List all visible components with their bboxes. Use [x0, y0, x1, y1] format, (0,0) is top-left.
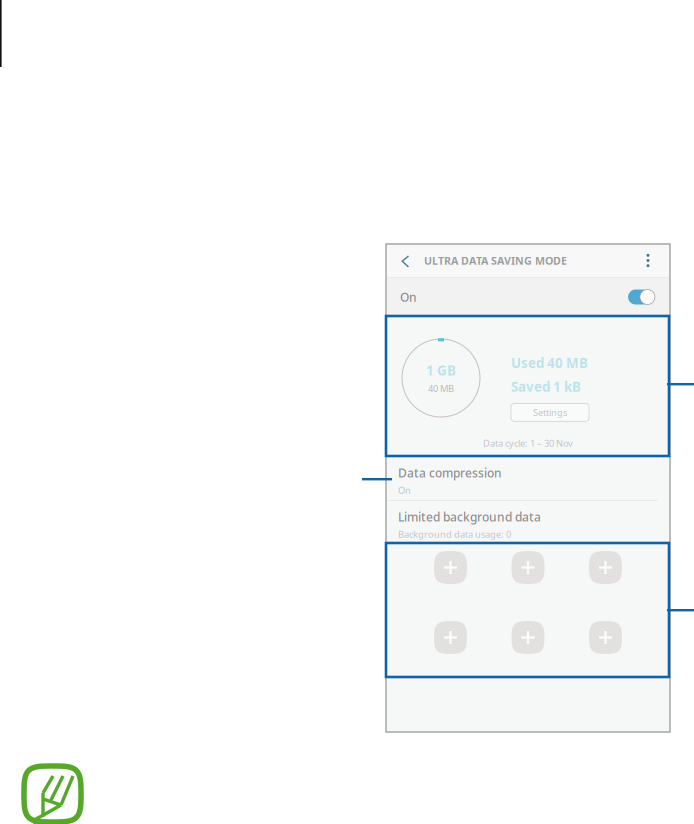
button[interactable]: Add app [511, 551, 544, 584]
button[interactable]: Add app [434, 621, 467, 654]
button[interactable]: Add app [589, 621, 622, 654]
button[interactable]: Limited background data [386, 501, 670, 543]
button[interactable]: Add app [434, 551, 467, 584]
staticText: On [398, 484, 411, 496]
button[interactable]: On [386, 278, 670, 316]
staticText: 40 MB [428, 382, 454, 395]
staticText: Data cycle: 1 – 30 Nov [483, 437, 573, 449]
staticText: Limited background data [398, 509, 541, 525]
staticText: Saved 1 kB [511, 378, 581, 395]
staticText: On [400, 289, 417, 305]
staticText: Data compression [398, 465, 502, 481]
staticText: Background data usage: 0 [398, 528, 511, 540]
staticText: ULTRA DATA SAVING MODE [424, 253, 567, 268]
staticText: Settings [533, 406, 567, 419]
staticText: 1 GB [426, 361, 456, 379]
button[interactable]: Back [386, 244, 424, 277]
button[interactable]: Data compression [386, 457, 670, 500]
button[interactable]: Settings [511, 403, 589, 421]
staticText: Used 40 MB [511, 354, 588, 372]
button[interactable]: Add app [589, 551, 622, 584]
button[interactable]: More options [626, 244, 670, 277]
button[interactable]: Add app [511, 621, 544, 654]
